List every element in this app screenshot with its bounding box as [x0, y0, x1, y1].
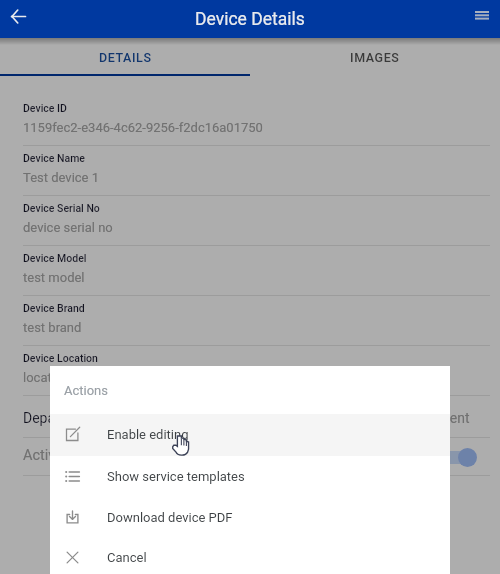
- staticText: department: [397, 410, 470, 426]
- staticText: Enable editing: [107, 427, 189, 442]
- staticText: DETAILS: [99, 50, 152, 65]
- staticText: Show service templates: [107, 469, 245, 484]
- button[interactable]: DETAILS: [0, 38, 250, 76]
- button[interactable]: Enable editing: [50, 414, 450, 456]
- button[interactable]: Device Brand: [0, 302, 500, 352]
- button[interactable]: IMAGES: [250, 38, 500, 76]
- button[interactable]: Cancel: [50, 539, 450, 574]
- staticText: 1159fec2-e346-4c62-9256-f2dc16a01750: [23, 120, 263, 135]
- staticText: IMAGES: [350, 50, 400, 65]
- staticText: Device Model: [23, 252, 87, 264]
- button[interactable]: Menu: [469, 3, 494, 28]
- button[interactable]: Show service templates: [50, 456, 450, 498]
- button[interactable]: Back: [6, 4, 30, 28]
- staticText: Active: [23, 447, 63, 464]
- button[interactable]: Active: [0, 438, 500, 476]
- button[interactable]: Device Name: [0, 152, 500, 202]
- button[interactable]: Device ID: [0, 102, 500, 152]
- staticText: Actions: [64, 383, 109, 398]
- button[interactable]: Department: [0, 402, 500, 438]
- button[interactable]: Download device PDF: [50, 498, 450, 539]
- staticText: Device Details: [195, 9, 305, 30]
- staticText: Device Location: [23, 352, 98, 364]
- staticText: Device Brand: [23, 302, 85, 314]
- staticText: Device Serial No: [23, 202, 100, 214]
- staticText: location: [23, 370, 70, 385]
- staticText: Download device PDF: [107, 510, 233, 525]
- button[interactable]: Device Model: [0, 252, 500, 302]
- button[interactable]: Device Location: [0, 352, 500, 402]
- staticText: Device ID: [23, 102, 67, 114]
- staticText: test brand: [23, 320, 82, 335]
- staticText: device serial no: [23, 220, 113, 235]
- staticText: Device Name: [23, 152, 85, 164]
- staticText: Test device 1: [23, 170, 100, 185]
- staticText: test model: [23, 270, 85, 285]
- staticText: Department: [23, 410, 97, 426]
- staticText: Cancel: [107, 550, 147, 565]
- button[interactable]: Device Serial No: [0, 202, 500, 252]
